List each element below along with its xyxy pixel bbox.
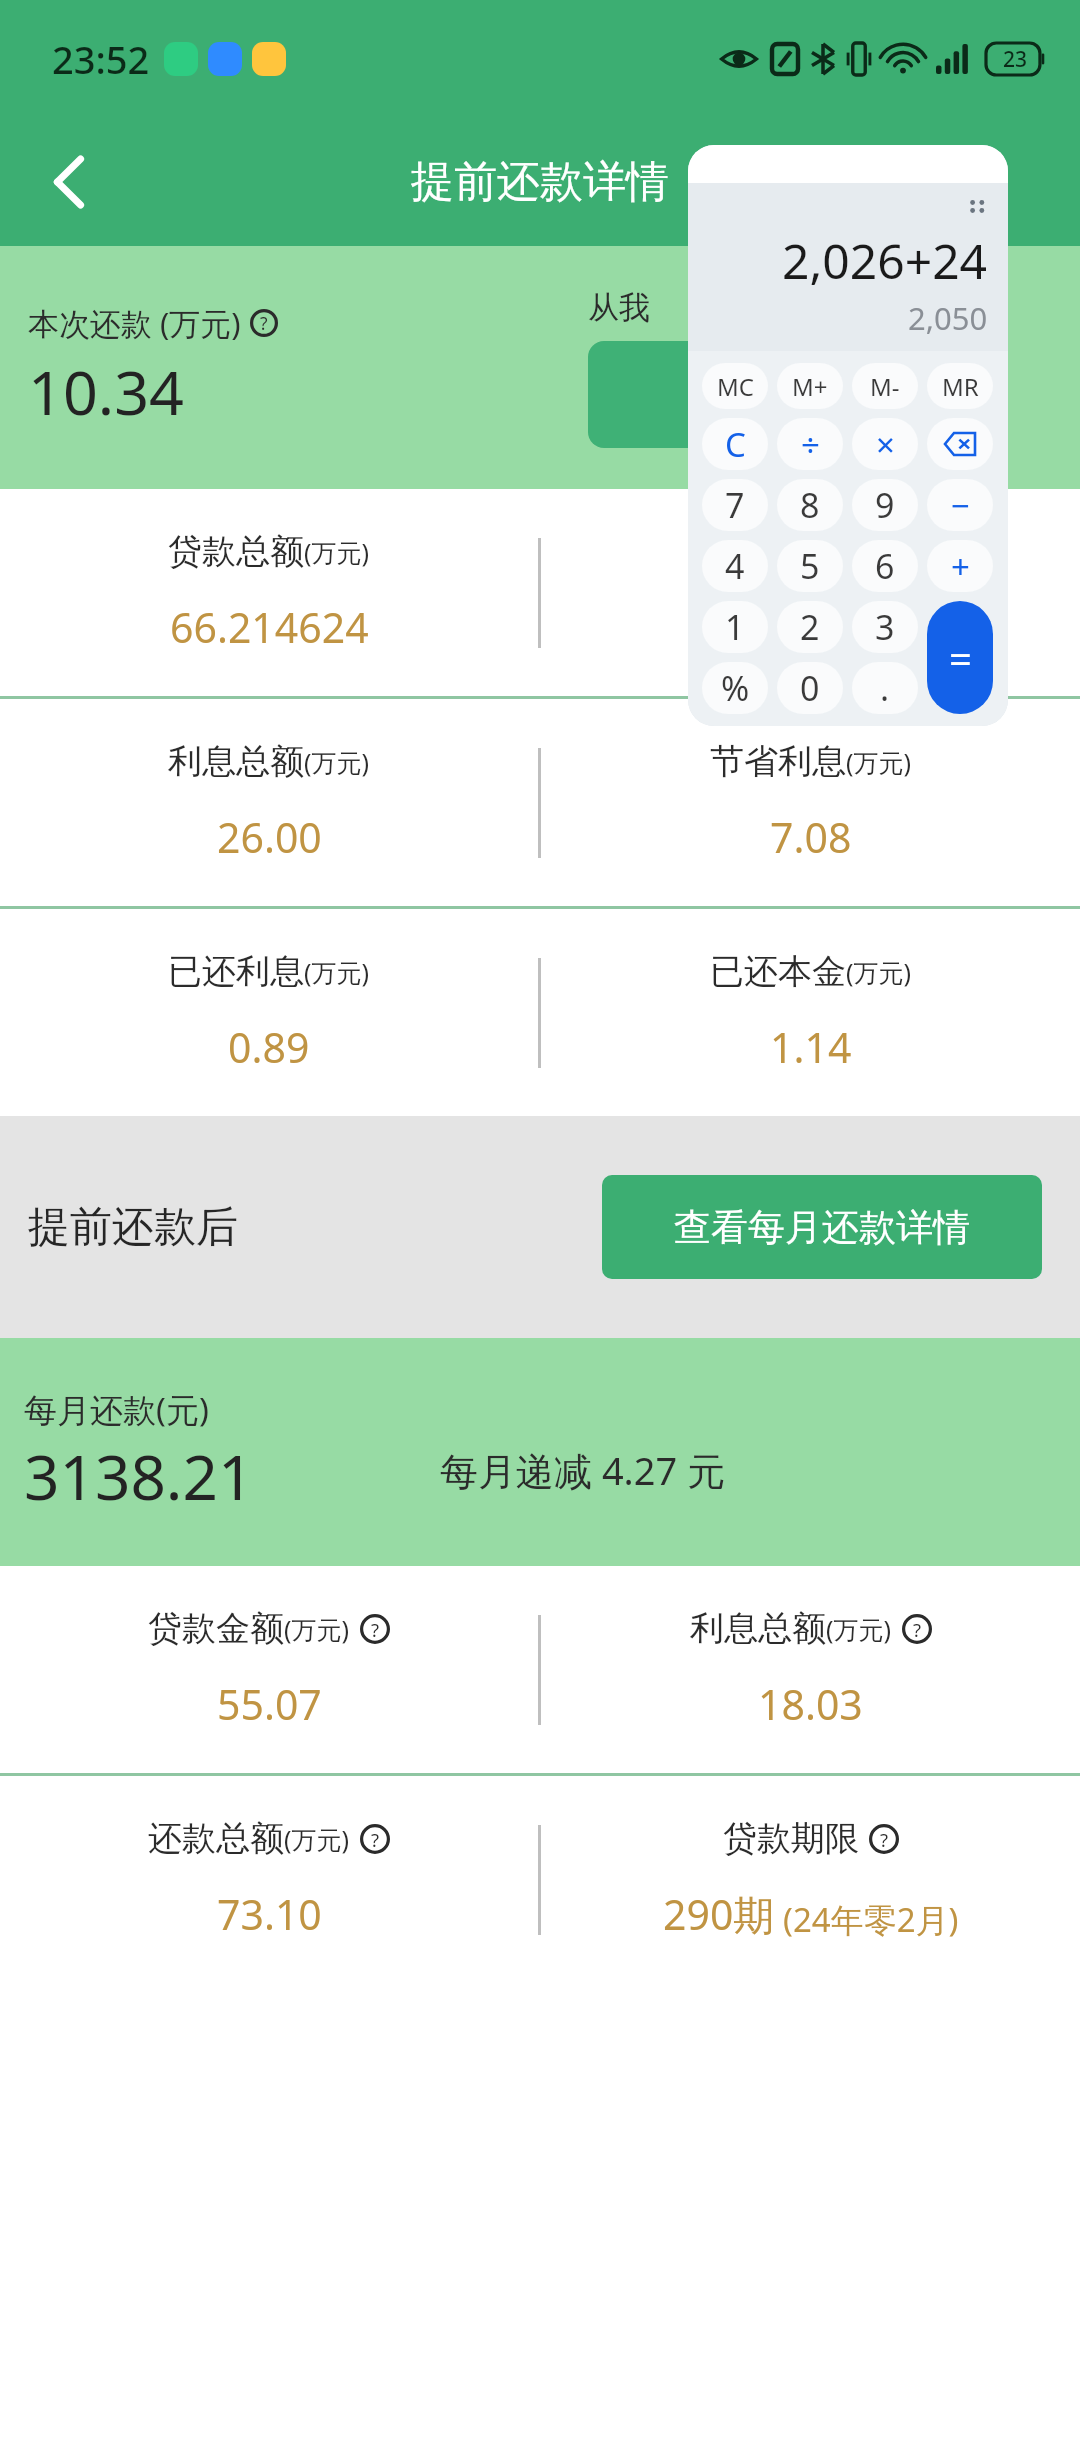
staticText: ?	[913, 1617, 922, 1642]
staticText: 本次还款 (万元)	[28, 302, 241, 344]
staticText: 0	[800, 665, 820, 711]
staticText: 每月还款(元)	[24, 1387, 209, 1432]
button[interactable]: 贷款期限	[541, 1776, 1080, 1983]
staticText: 55.07	[217, 1676, 322, 1732]
staticText: (万元)	[846, 955, 912, 989]
button[interactable]: 利息总额	[541, 1566, 1080, 1773]
staticText: 提前还款后	[28, 1201, 238, 1254]
staticText: 23	[1003, 45, 1028, 74]
staticText: 8	[800, 482, 820, 528]
staticText: 2,050	[908, 297, 988, 339]
staticText: M-	[870, 370, 900, 403]
staticText: 66.214624	[170, 599, 369, 655]
staticText: 贷款金额	[148, 1607, 284, 1650]
button[interactable]: ×	[852, 418, 918, 470]
staticText: M+	[792, 370, 828, 403]
button[interactable]: Back	[22, 136, 114, 228]
staticText: (万元)	[284, 1822, 350, 1856]
button[interactable]: %	[702, 662, 768, 714]
staticText: 还款总额	[148, 1817, 284, 1860]
staticText: 26.00	[217, 809, 322, 865]
button[interactable]: 0	[777, 662, 843, 714]
staticText: C	[725, 422, 746, 467]
button[interactable]: 8	[777, 479, 843, 531]
staticText: (万元)	[846, 745, 912, 779]
staticText: 23:52	[52, 33, 150, 85]
button[interactable]: .	[852, 662, 918, 714]
button[interactable]: 贷款总额	[0, 489, 538, 696]
staticText: =	[949, 631, 972, 685]
button[interactable]: 7	[702, 479, 768, 531]
button[interactable]: 利息总额	[0, 699, 538, 906]
staticText: .	[880, 665, 890, 711]
button[interactable]: =	[927, 601, 993, 714]
button[interactable]: +	[927, 540, 993, 592]
staticText: −	[951, 483, 970, 528]
staticText: 4	[725, 543, 745, 589]
staticText: (万元)	[826, 1612, 892, 1646]
staticText: ?	[371, 1827, 380, 1852]
staticText: 利息总额	[168, 740, 304, 783]
button[interactable]: MC	[702, 363, 768, 409]
button[interactable]: −	[927, 479, 993, 531]
staticText: 6	[875, 543, 895, 589]
button[interactable]: MR	[927, 363, 993, 409]
staticText: 3	[875, 604, 895, 650]
button[interactable]: M+	[777, 363, 843, 409]
button[interactable]: ÷	[777, 418, 843, 470]
staticText: 2,026+24	[782, 228, 988, 293]
staticText: 3138.21	[24, 1434, 254, 1518]
staticText: 每月递减 4.27 元	[440, 1444, 726, 1496]
staticText: 9	[875, 482, 895, 528]
button[interactable]: 3	[852, 601, 918, 653]
staticText: 查看每月还款详情	[674, 1204, 970, 1251]
button[interactable]: 已还本金	[541, 909, 1080, 1116]
button[interactable]	[588, 341, 888, 448]
staticText: (万元)	[284, 1612, 350, 1646]
button[interactable]: 6	[852, 540, 918, 592]
button[interactable]: 还款总额	[0, 1776, 538, 1983]
staticText: 10.34	[28, 350, 184, 433]
staticText: 5	[800, 543, 820, 589]
staticText: ?	[371, 1617, 380, 1642]
button[interactable]: C	[702, 418, 768, 470]
staticText: 1.14	[770, 1019, 852, 1075]
button[interactable]: 贷款金额	[0, 1566, 538, 1773]
staticText: 7.08	[770, 809, 852, 865]
staticText: 0.89	[228, 1019, 310, 1075]
staticText: 已还利息	[168, 950, 304, 993]
staticText: 节省利息	[710, 740, 846, 783]
staticText: 贷款期限	[723, 1817, 859, 1860]
staticText: ?	[260, 311, 268, 335]
staticText: (24年零2月)	[783, 1897, 959, 1942]
staticText: MC	[717, 370, 754, 403]
staticText: 2	[800, 604, 820, 650]
staticText: 18.03	[758, 1676, 863, 1732]
staticText: 7	[725, 482, 745, 528]
staticText: (万元)	[304, 535, 370, 569]
staticText: MR	[942, 370, 979, 403]
staticText: 利息总额	[690, 1607, 826, 1650]
button[interactable]	[927, 418, 993, 470]
staticText: +	[951, 544, 970, 589]
staticText: %	[721, 665, 750, 711]
button[interactable]: 2	[777, 601, 843, 653]
staticText: 贷款总额	[168, 530, 304, 573]
staticText: 已还本金	[710, 950, 846, 993]
staticText: (万元)	[304, 955, 370, 989]
button[interactable]: 已还利息	[0, 909, 538, 1116]
button[interactable]: M-	[852, 363, 918, 409]
button[interactable]: 查看每月还款详情	[602, 1175, 1042, 1279]
staticText: 290期	[663, 1886, 775, 1942]
staticText: ÷	[801, 422, 820, 467]
button[interactable]: 节省利息	[541, 699, 1080, 906]
staticText: 1	[725, 604, 745, 650]
button[interactable]: 4	[702, 540, 768, 592]
staticText: 提前还款详情	[411, 155, 669, 209]
staticText: (万元)	[304, 745, 370, 779]
staticText: 73.10	[217, 1886, 322, 1942]
button[interactable]: 5	[777, 540, 843, 592]
staticText: 从我	[588, 288, 650, 327]
button[interactable]: 1	[702, 601, 768, 653]
button[interactable]: 9	[852, 479, 918, 531]
